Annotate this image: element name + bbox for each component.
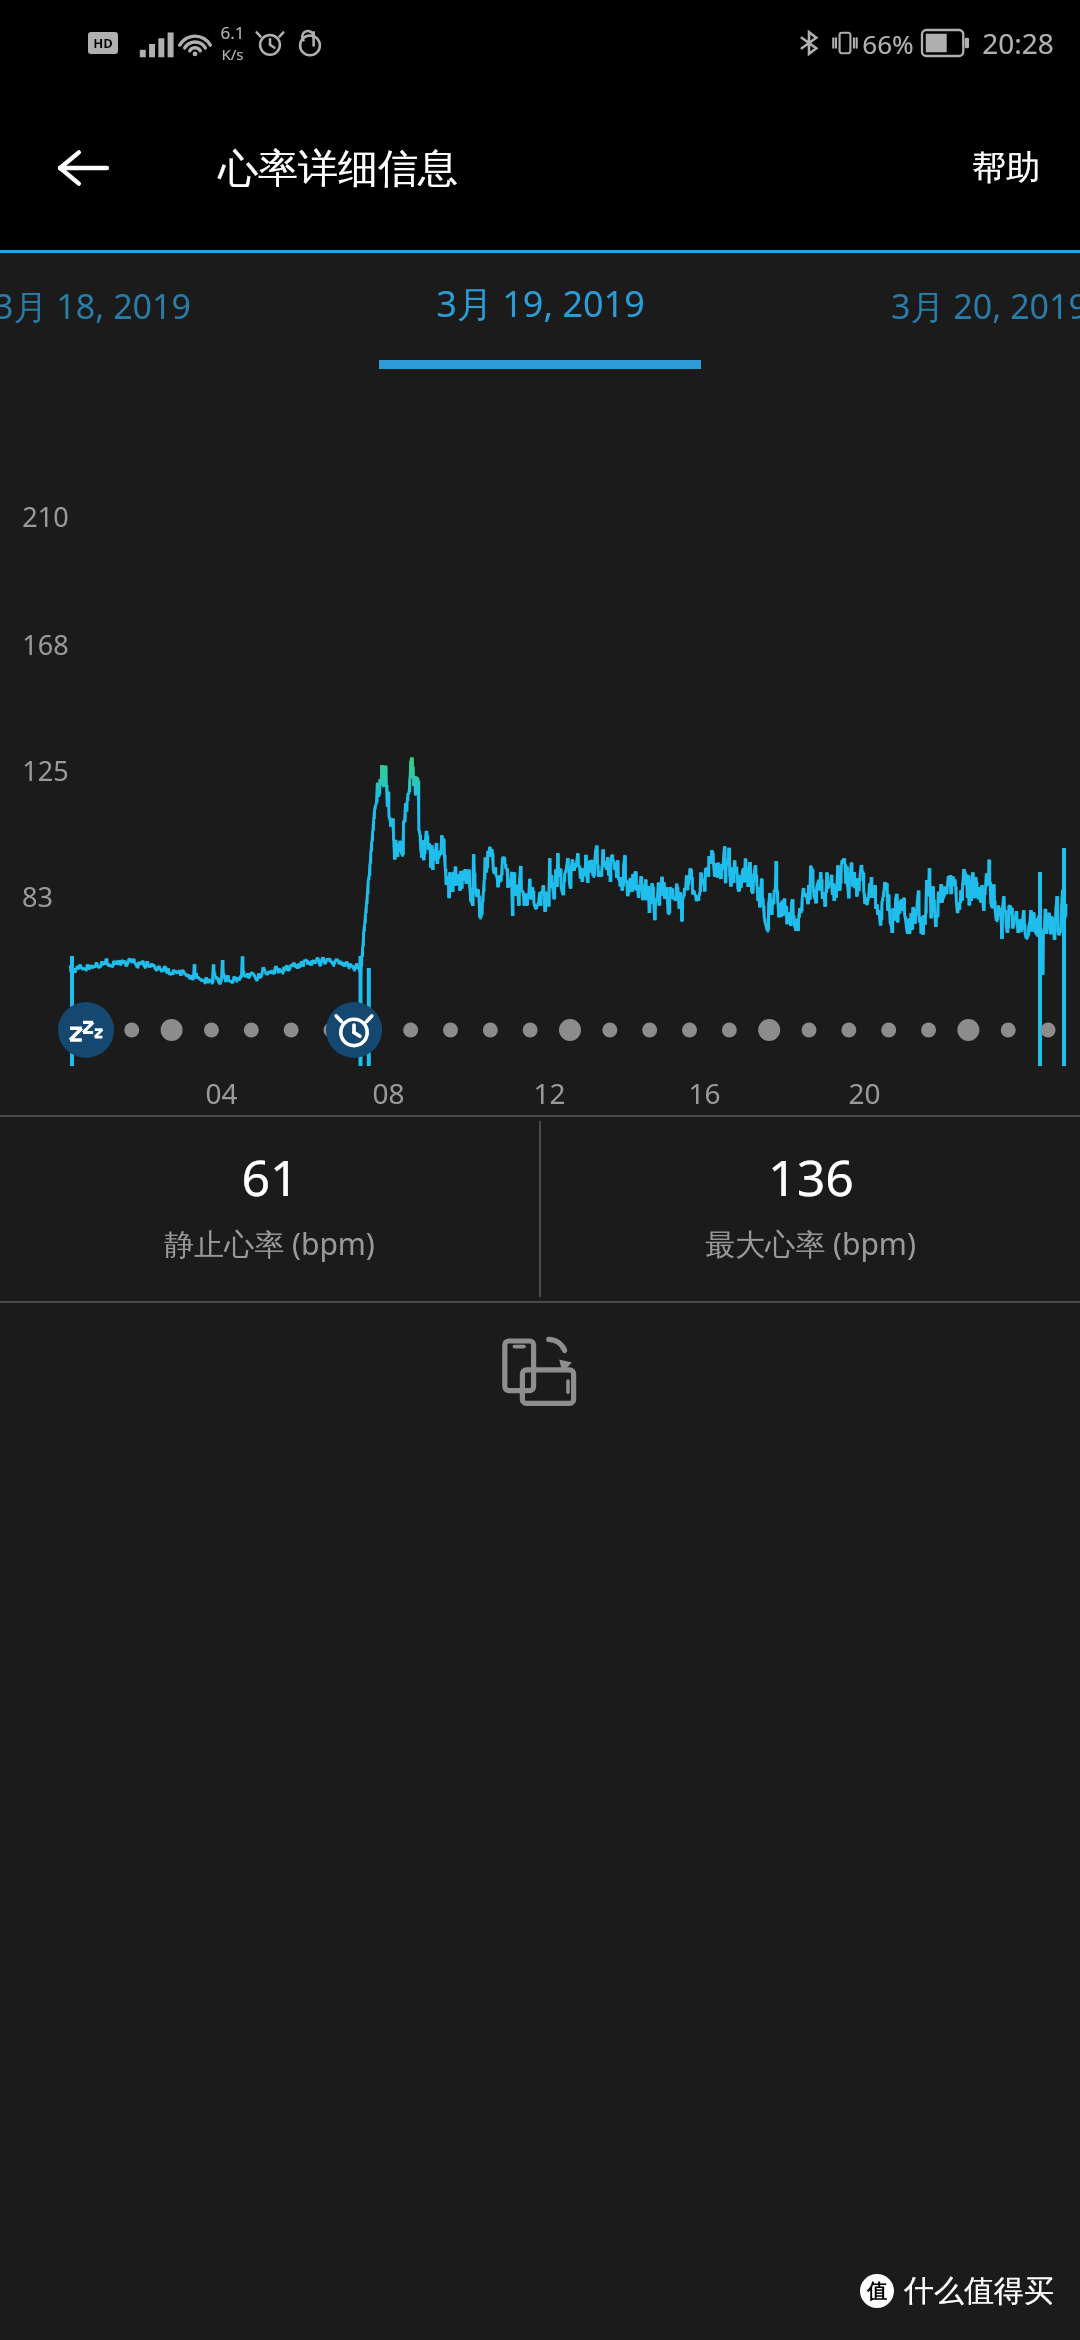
staticText: 136 xyxy=(768,1143,854,1211)
staticText: 125 xyxy=(22,752,69,789)
staticText: 83 xyxy=(22,878,53,915)
button[interactable]: 61 xyxy=(0,1117,539,1264)
staticText: 6.1 xyxy=(220,21,245,44)
staticText: 3月 19, 2019 xyxy=(436,279,645,328)
button[interactable]: Alarm xyxy=(326,1002,382,1058)
staticText: 心率详细信息 xyxy=(218,143,458,193)
button[interactable]: 3月 19, 2019 xyxy=(408,275,673,332)
staticText: HD xyxy=(93,34,113,52)
staticText: 20:28 xyxy=(982,24,1054,62)
button[interactable]: 3月 18, 2019 xyxy=(0,275,199,337)
staticText: 16 xyxy=(688,1074,721,1112)
button[interactable]: Rotate screen xyxy=(485,1318,595,1428)
staticText: 66% xyxy=(862,26,914,61)
staticText: 帮助 xyxy=(972,146,1040,189)
staticText: 08 xyxy=(372,1074,405,1112)
staticText: 210 xyxy=(22,498,69,535)
staticText: 什么值得买 xyxy=(904,2272,1054,2310)
button[interactable]: 136 xyxy=(541,1117,1080,1264)
staticText: 最大心率 (bpm) xyxy=(705,1223,916,1264)
staticText: 12 xyxy=(533,1074,566,1112)
staticText: 61 xyxy=(241,1143,299,1211)
staticText: 3月 20, 2019 xyxy=(891,283,1080,329)
staticText: 20 xyxy=(848,1074,881,1112)
button[interactable]: 3月 20, 2019 xyxy=(883,275,1080,337)
button[interactable]: Sleep xyxy=(58,1002,114,1058)
staticText: 04 xyxy=(205,1074,238,1112)
staticText: 3月 18, 2019 xyxy=(0,283,191,329)
staticText: 静止心率 (bpm) xyxy=(164,1223,375,1264)
staticText: K/s xyxy=(221,44,244,64)
button[interactable]: Back xyxy=(40,125,126,211)
staticText: 168 xyxy=(22,626,69,663)
button[interactable]: 帮助 xyxy=(950,128,1062,207)
staticText: 值 xyxy=(867,2279,887,2304)
